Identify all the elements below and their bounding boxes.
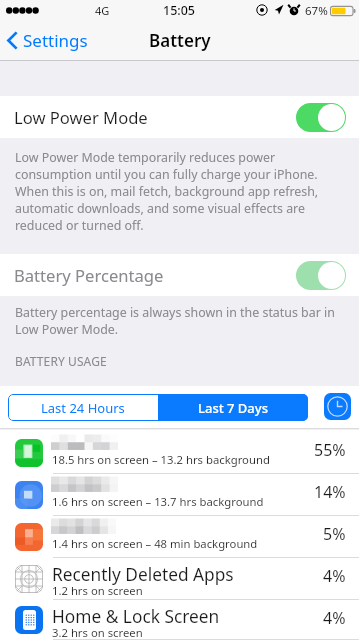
button[interactable]: 1.6 hrs on screen – 13.7 hrs background [0,474,359,516]
staticText: 14% [314,481,346,503]
staticText: Recently Deleted Apps [52,563,234,587]
staticText: Low Power Mode temporarily reduces power [15,149,276,166]
staticText: BATTERY USAGE [15,353,107,369]
button[interactable]: 1.4 hrs on screen – 48 min background [0,516,359,558]
staticText: 5% [323,523,346,545]
staticText: reduced or turned off. [15,217,144,234]
button[interactable]: Low Power Mode [0,96,359,138]
button[interactable]: Last 7 Days [158,394,308,421]
staticText: Low Power Mode. [15,321,119,338]
staticText: Battery [149,29,211,52]
staticText: Last 7 Days [198,399,268,417]
staticText: Home & Lock Screen [52,605,220,629]
staticText: Settings [23,29,88,52]
staticText: Low Power Mode [14,106,148,129]
staticText: 3.2 hrs on screen [52,625,143,640]
staticText: automatic downloads, and some visual eff… [15,200,305,217]
staticText: 15:05 [163,2,196,19]
staticText: Last 24 Hours [41,399,125,417]
staticText: 55% [314,439,346,461]
staticText: 18.5 hrs on screen – 13.2 hrs background [52,452,270,467]
staticText: 1.2 hrs on screen [52,583,143,598]
button[interactable]: 18.5 hrs on screen – 13.2 hrs background [0,432,359,474]
button[interactable]: Recently Deleted Apps [0,558,359,600]
staticText: When this is on, mail fetch, background … [15,183,319,200]
staticText: 4G [95,3,110,18]
staticText: 4% [323,607,346,629]
button[interactable]: Settings [7,20,88,61]
staticText: Battery Percentage [14,264,164,287]
button[interactable]: Battery Percentage [0,254,359,296]
button[interactable]: Home & Lock Screen [0,600,359,640]
staticText: 4% [323,565,346,587]
staticText: 67% [305,3,328,19]
staticText: consumption until you can fully charge y… [15,166,318,183]
staticText: 1.4 hrs on screen – 48 min background [52,536,258,551]
button[interactable]: Last 24 Hours [8,394,158,421]
button[interactable]: Battery usage over time [324,393,351,420]
staticText: Battery percentage is always shown in th… [15,304,335,321]
staticText: 1.6 hrs on screen – 13.7 hrs background [52,494,264,509]
